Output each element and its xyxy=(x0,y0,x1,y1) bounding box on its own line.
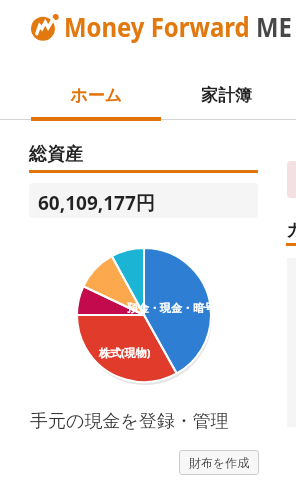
button[interactable]: Money Forward xyxy=(31,9,296,44)
button[interactable]: 財布を作成 xyxy=(179,450,259,475)
staticText: 家計簿 xyxy=(201,85,252,106)
staticText: ホーム xyxy=(70,85,122,106)
staticText: 財布を作成 xyxy=(189,455,250,470)
staticText: 手元の現金を登録・管理 xyxy=(30,410,229,433)
staticText: 預金・現金・暗号資産 xyxy=(127,301,211,315)
staticText: 60,109,177円 xyxy=(38,190,155,216)
button[interactable]: 家計簿 xyxy=(161,78,291,119)
other: Money Forward xyxy=(31,13,57,41)
staticText: Money Forward xyxy=(64,9,250,44)
staticText: ME xyxy=(256,9,293,44)
staticText: 株式(現物) xyxy=(99,345,151,360)
staticText: カード xyxy=(286,219,296,242)
staticText: 総資産 xyxy=(29,143,83,166)
button[interactable]: ホーム xyxy=(31,78,161,119)
